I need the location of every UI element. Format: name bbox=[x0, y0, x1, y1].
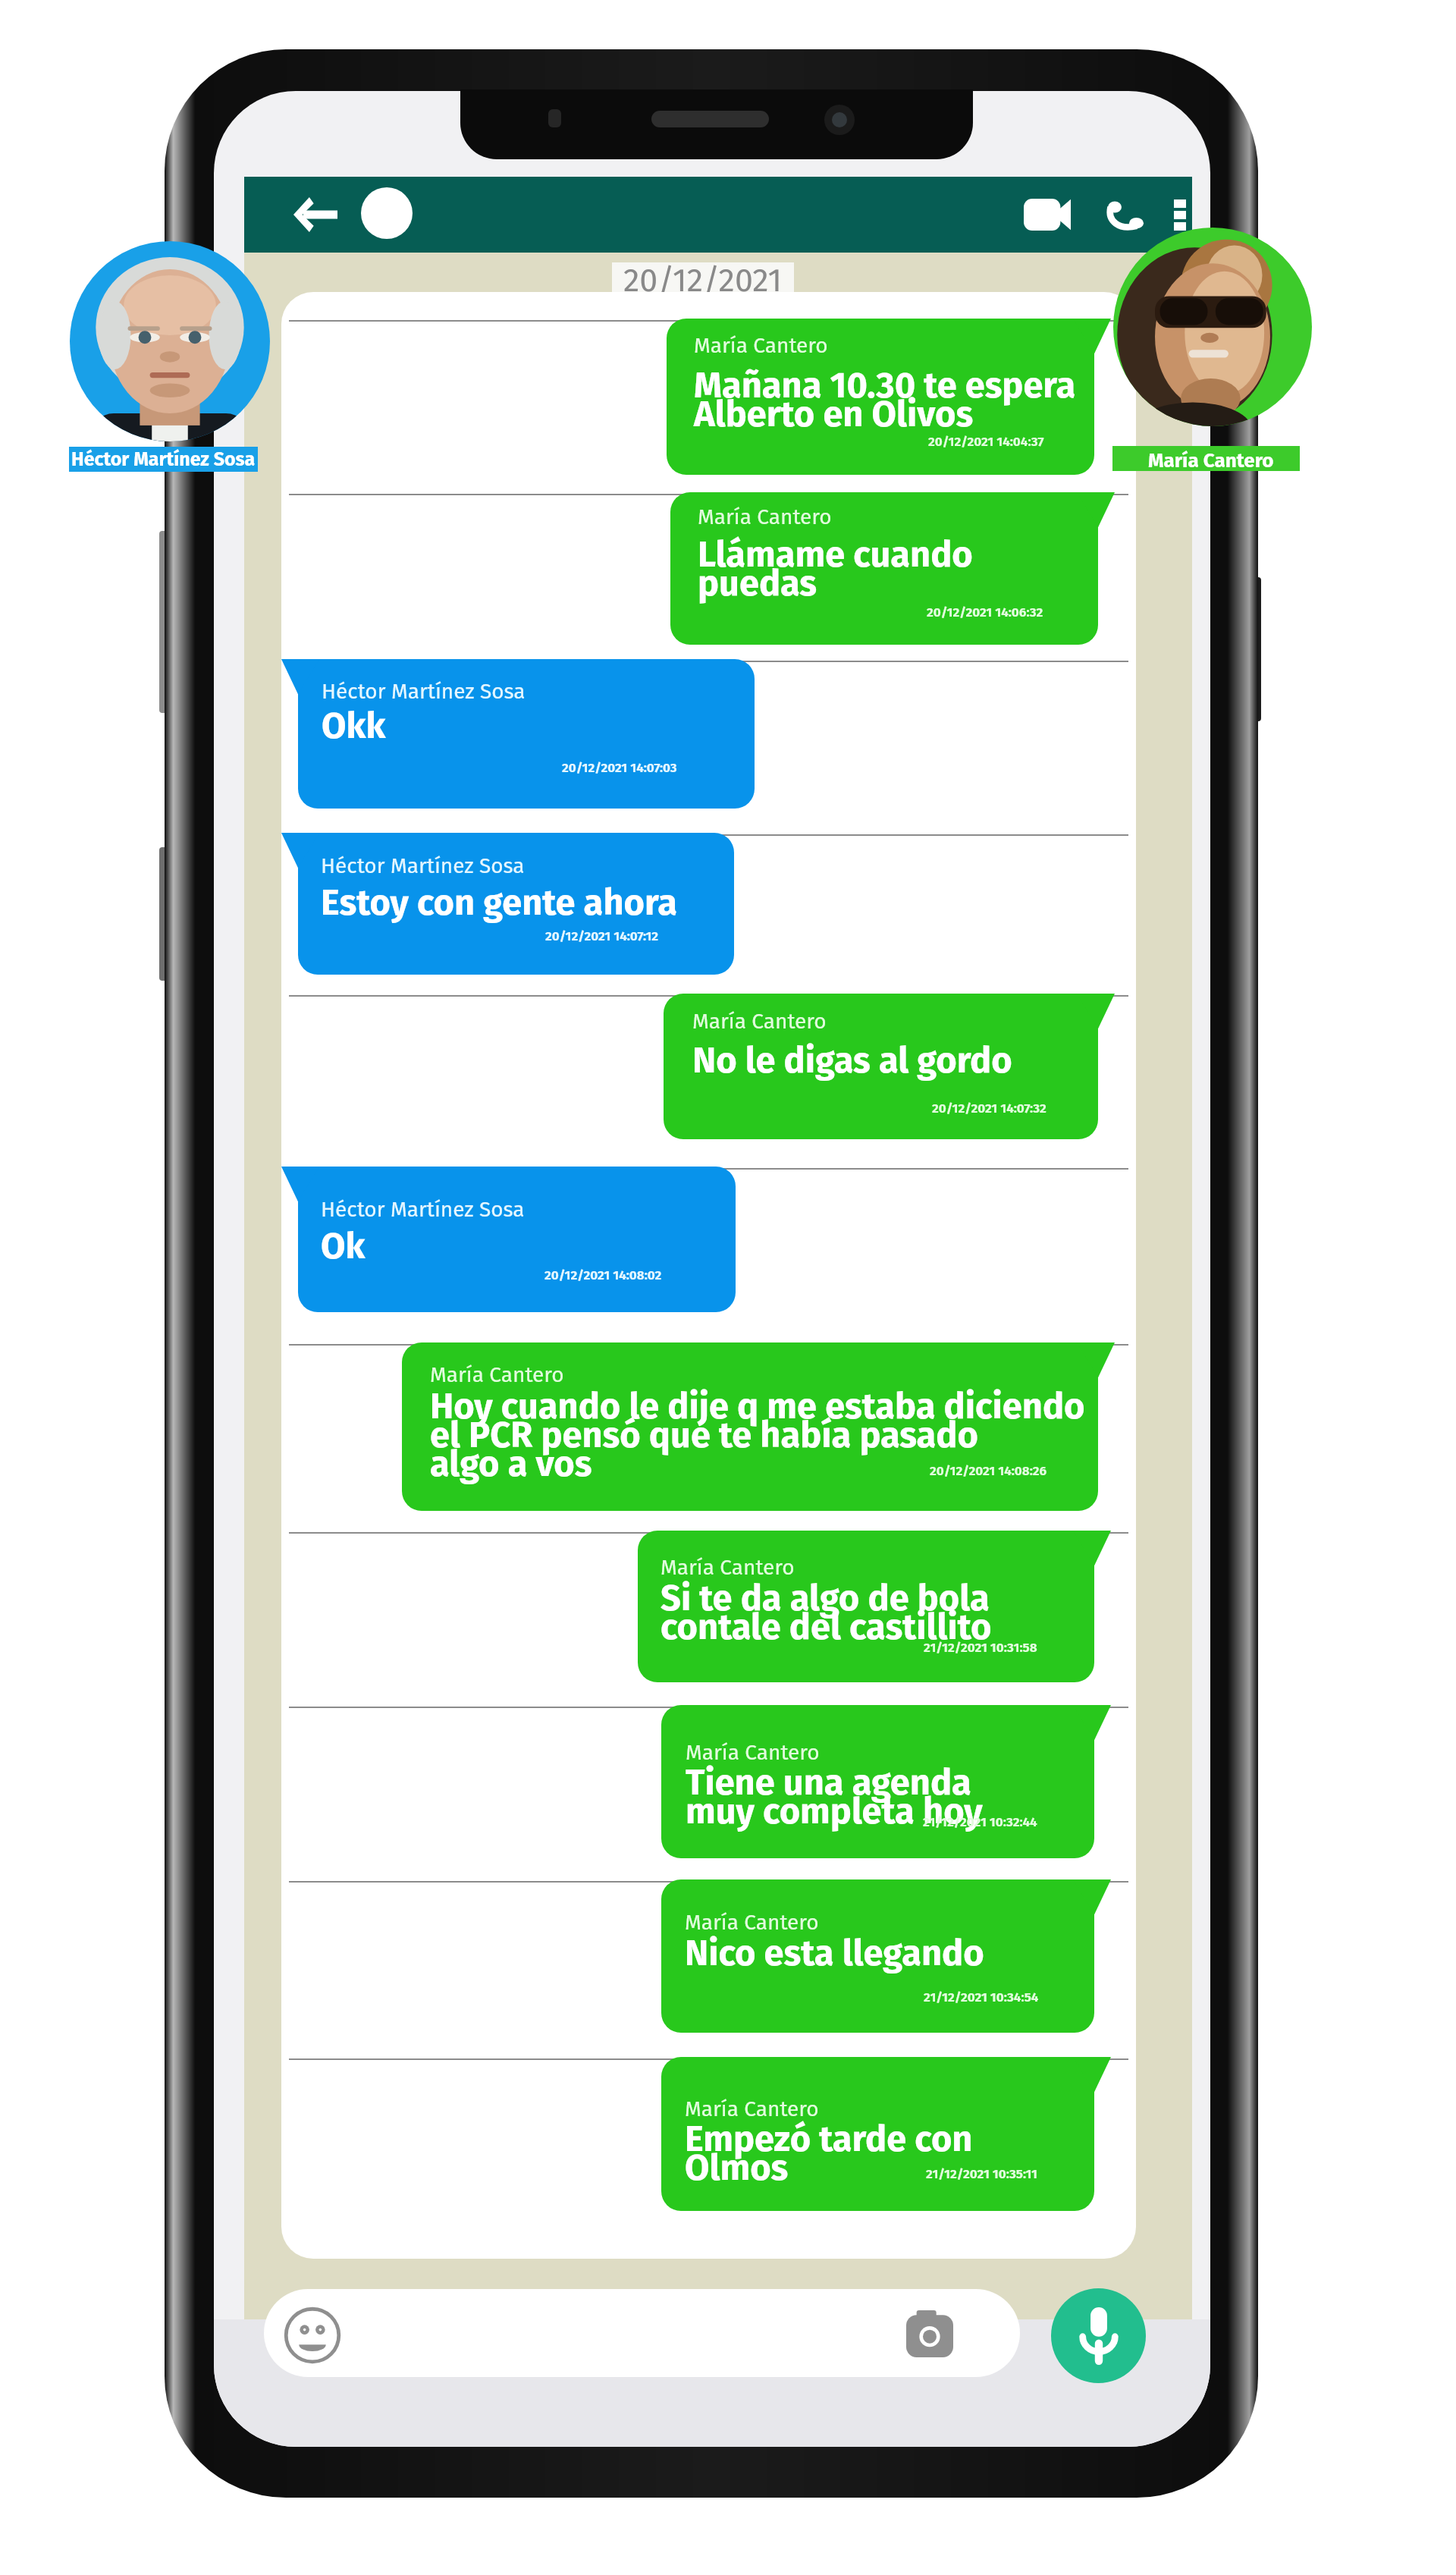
button[interactable]: Back bbox=[288, 183, 343, 247]
staticText: Olmos bbox=[685, 2146, 789, 2189]
button[interactable]: María Cantero bbox=[661, 1879, 1111, 2033]
staticText: 20/12/2021 bbox=[623, 261, 783, 296]
button[interactable]: Héctor Martínez Sosa bbox=[281, 1167, 736, 1312]
button[interactable]: Héctor Martínez Sosa bbox=[70, 241, 270, 441]
button[interactable]: María Cantero bbox=[670, 492, 1115, 645]
staticText: Empezó tarde con bbox=[685, 2118, 973, 2160]
staticText: Héctor Martínez Sosa bbox=[321, 1197, 525, 1223]
button[interactable]: Héctor Martínez Sosa bbox=[281, 659, 755, 809]
staticText: muy completa hoy bbox=[686, 1790, 983, 1832]
staticText: Estoy con gente ahora bbox=[321, 881, 677, 924]
staticText: 21/12/2021 10:35:11 bbox=[926, 2166, 1037, 2181]
other: Camera bbox=[906, 2310, 953, 2357]
staticText: contale del castillito bbox=[661, 1606, 992, 1648]
staticText: 20/12/2021 14:07:12 bbox=[545, 928, 659, 944]
staticText: 20/12/2021 14:08:02 bbox=[544, 1267, 662, 1283]
staticText: 21/12/2021 10:32:44 bbox=[923, 1814, 1037, 1829]
staticText: Hoy cuando le dije q me estaba diciendo bbox=[430, 1385, 1085, 1427]
button[interactable]: María Cantero bbox=[667, 319, 1111, 475]
other: Emoji bbox=[284, 2307, 340, 2363]
staticText: María Cantero bbox=[686, 1740, 820, 1766]
button[interactable]: Héctor Martínez Sosa bbox=[281, 833, 734, 975]
button[interactable]: María Cantero bbox=[664, 994, 1115, 1139]
button[interactable]: María Cantero bbox=[402, 1342, 1115, 1511]
button[interactable]: Video call bbox=[1016, 186, 1078, 243]
button[interactable]: Emoji bbox=[264, 2289, 1020, 2377]
button[interactable]: Record voice message bbox=[1051, 2288, 1146, 2383]
staticText: María Cantero bbox=[1148, 449, 1274, 473]
staticText: Héctor Martínez Sosa bbox=[71, 448, 256, 471]
button[interactable]: Voice call bbox=[1097, 186, 1154, 243]
staticText: Héctor Martínez Sosa bbox=[321, 853, 525, 879]
button[interactable]: María Cantero bbox=[661, 1705, 1111, 1858]
staticText: 21/12/2021 10:34:54 bbox=[924, 1989, 1039, 2005]
staticText: Alberto en Olivos bbox=[694, 393, 974, 435]
staticText: el PCR pensó que te había pasado bbox=[430, 1414, 978, 1456]
staticText: Okk bbox=[322, 705, 386, 747]
staticText: Si te da algo de bola bbox=[661, 1577, 990, 1619]
staticText: Mañana 10.30 te espera bbox=[694, 364, 1076, 407]
staticText: 20/12/2021 14:07:32 bbox=[932, 1101, 1046, 1116]
staticText: María Cantero bbox=[430, 1362, 564, 1388]
staticText: 20/12/2021 14:06:32 bbox=[927, 604, 1043, 620]
button[interactable]: More options bbox=[1160, 186, 1200, 243]
button[interactable]: María Cantero bbox=[638, 1531, 1111, 1682]
staticText: 20/12/2021 14:04:37 bbox=[928, 434, 1044, 449]
staticText: No le digas al gordo bbox=[692, 1039, 1012, 1082]
staticText: 20/12/2021 14:07:03 bbox=[562, 760, 677, 775]
staticText: Ok bbox=[321, 1225, 366, 1267]
staticText: María Cantero bbox=[685, 2096, 819, 2122]
staticText: María Cantero bbox=[685, 1910, 819, 1936]
staticText: Nico esta llegando bbox=[685, 1932, 984, 1974]
staticText: Héctor Martínez Sosa bbox=[322, 679, 526, 705]
staticText: María Cantero bbox=[661, 1555, 795, 1581]
staticText: 20/12/2021 14:08:26 bbox=[930, 1463, 1047, 1478]
staticText: María Cantero bbox=[698, 504, 832, 530]
button[interactable]: Contact photo bbox=[361, 187, 413, 239]
staticText: María Cantero bbox=[694, 333, 828, 359]
staticText: María Cantero bbox=[692, 1009, 827, 1035]
button[interactable]: María Cantero bbox=[661, 2057, 1111, 2211]
staticText: Llámame cuando bbox=[698, 533, 973, 576]
staticText: 21/12/2021 10:31:58 bbox=[924, 1640, 1037, 1655]
staticText: Tiene una agenda bbox=[686, 1761, 971, 1804]
staticText: puedas bbox=[698, 562, 817, 604]
button[interactable]: María Cantero bbox=[1113, 228, 1312, 426]
staticText: algo a vos bbox=[430, 1443, 592, 1485]
